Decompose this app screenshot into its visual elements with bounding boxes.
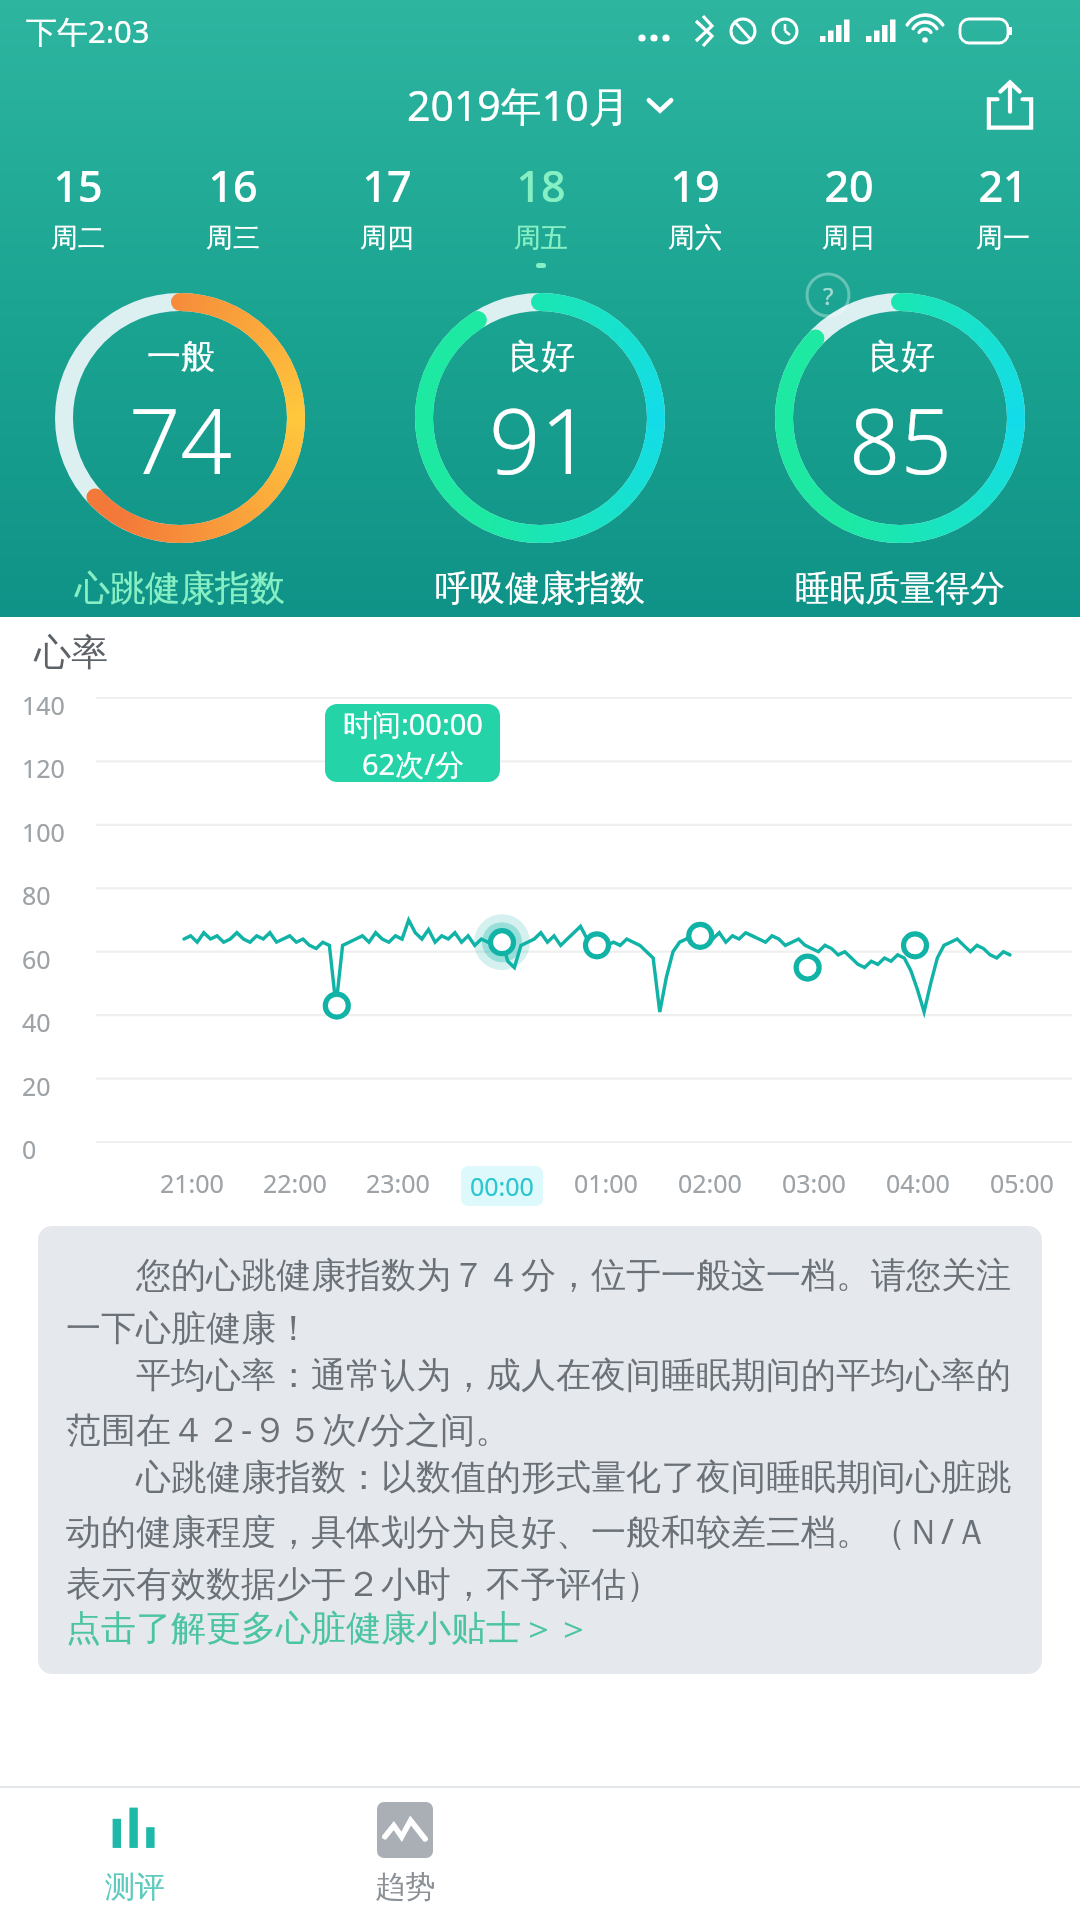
staticText: 一般: [147, 335, 215, 378]
staticText: 04:00: [886, 1166, 950, 1200]
button[interactable]: 趋势: [270, 1788, 540, 1920]
button[interactable]: 2019年10月: [407, 77, 674, 133]
staticText: 心跳健康指数：以数值的形式量化了夜间睡眠期间心脏跳动的健康程度，具体划分为良好、…: [66, 1452, 1014, 1606]
staticText: 您的心跳健康指数为７４分，位于一般这一档。请您关注一下心脏健康！: [66, 1250, 1014, 1350]
staticText: 140: [22, 688, 65, 722]
staticText: 睡眠质量得分: [795, 566, 1005, 610]
staticText: 下午2:03: [26, 10, 150, 52]
button[interactable]: 21: [926, 148, 1080, 268]
staticText: 16: [208, 156, 258, 215]
staticText: 01:00: [574, 1166, 638, 1200]
button[interactable]: 良好: [360, 290, 720, 617]
staticText: 23:00: [366, 1166, 430, 1200]
staticText: 80: [22, 878, 51, 912]
staticText: 点击了解更多心脏健康小贴士＞＞: [66, 1606, 591, 1650]
button[interactable]: 一般: [0, 290, 360, 617]
staticText: 周六: [668, 221, 722, 255]
staticText: 03:00: [782, 1166, 846, 1200]
staticText: 85: [849, 378, 952, 501]
staticText: 00:00: [470, 1169, 534, 1203]
staticText: 周二: [51, 221, 105, 255]
button[interactable]: Help: [805, 272, 851, 318]
button[interactable]: 16: [155, 148, 310, 268]
staticText: 2019年10月: [407, 77, 630, 133]
staticText: 18: [516, 156, 566, 215]
button[interactable]: 20: [772, 148, 926, 268]
staticText: 62次/分: [362, 744, 464, 782]
staticText: 0: [22, 1132, 37, 1166]
staticText: 周一: [976, 221, 1030, 255]
staticText: 心率: [34, 629, 108, 676]
staticText: 良好: [507, 335, 575, 378]
button[interactable]: Share: [980, 75, 1040, 135]
staticText: 周四: [360, 221, 414, 255]
button[interactable]: 15: [0, 148, 155, 268]
staticText: 20: [824, 156, 874, 215]
staticText: 呼吸健康指数: [435, 566, 645, 610]
staticText: 21: [978, 156, 1028, 215]
staticText: ?: [823, 279, 834, 312]
button[interactable]: 18: [464, 148, 618, 268]
staticText: 22:00: [263, 1166, 327, 1200]
staticText: 40: [22, 1005, 51, 1039]
staticText: 周五: [514, 221, 568, 255]
staticText: 19: [670, 156, 720, 215]
staticText: 02:00: [678, 1166, 742, 1200]
staticText: 周三: [206, 221, 260, 255]
staticText: 趋势: [375, 1868, 435, 1906]
button[interactable]: 良好: [720, 290, 1080, 617]
staticText: 17: [362, 156, 412, 215]
staticText: 60: [22, 942, 51, 976]
staticText: 平均心率：通常认为，成人在夜间睡眠期间的平均心率的范围在４２-９５次/分之间。: [66, 1350, 1014, 1452]
staticText: 120: [22, 751, 65, 785]
staticText: 100: [22, 815, 65, 849]
staticText: 91: [489, 378, 592, 501]
staticText: 20: [22, 1069, 51, 1103]
button[interactable]: 19: [618, 148, 772, 268]
staticText: 15: [53, 156, 103, 215]
staticText: 21:00: [160, 1166, 224, 1200]
staticText: 心跳健康指数: [75, 566, 285, 610]
staticText: 良好: [867, 335, 935, 378]
button[interactable]: 测评: [0, 1788, 270, 1920]
button[interactable]: 点击了解更多心脏健康小贴士＞＞: [66, 1606, 591, 1650]
staticText: 05:00: [990, 1166, 1054, 1200]
staticText: 74: [129, 378, 232, 501]
staticText: 周日: [822, 221, 876, 255]
button[interactable]: 17: [310, 148, 464, 268]
staticText: 测评: [105, 1868, 165, 1906]
staticText: 时间:00:00: [343, 704, 483, 744]
